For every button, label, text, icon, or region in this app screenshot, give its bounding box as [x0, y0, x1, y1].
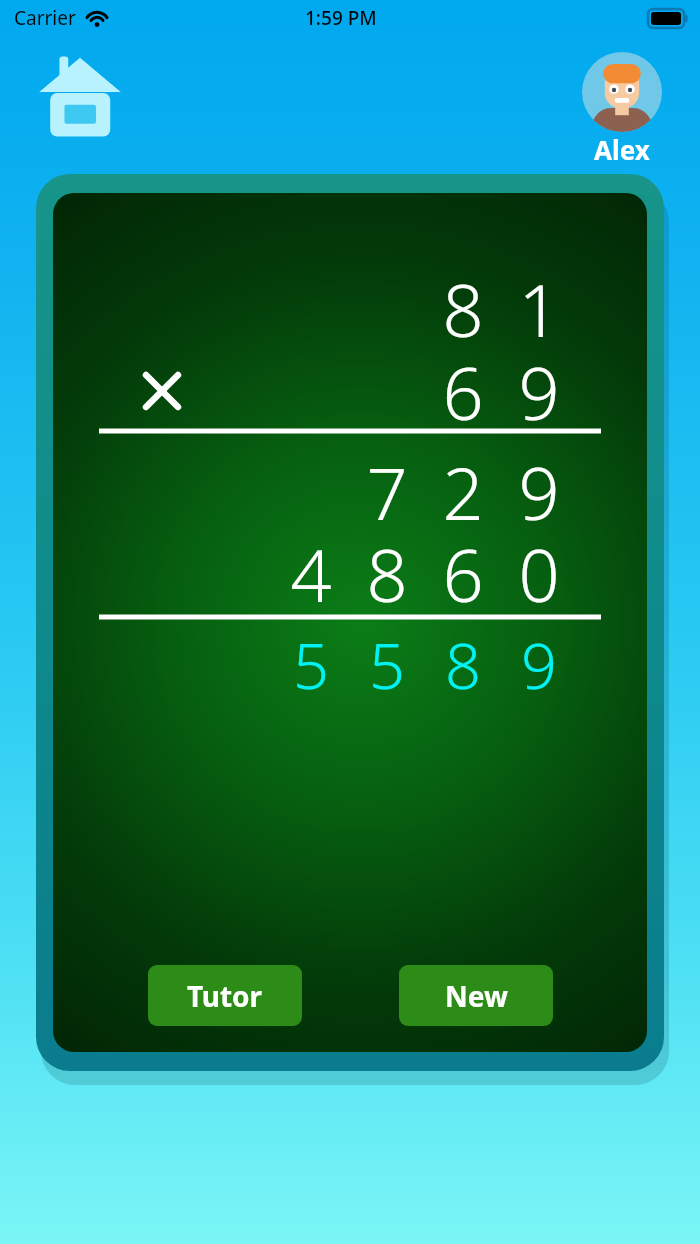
staticText: 7 [366, 443, 408, 541]
staticText: 9 [518, 443, 560, 541]
button[interactable]: Profile Alex [580, 52, 664, 162]
staticText: 4 [290, 525, 332, 623]
staticText: 1:59 PM [305, 5, 377, 31]
button[interactable]: New [399, 965, 553, 1026]
staticText: 5 [369, 622, 405, 708]
staticText: Alex [594, 132, 650, 164]
staticText: 1 [518, 260, 560, 358]
staticText: 9 [521, 622, 557, 708]
staticText: 2 [442, 443, 484, 541]
staticText: 8 [366, 525, 408, 623]
staticText: 0 [518, 525, 560, 623]
staticText: 5 [293, 622, 329, 708]
button[interactable]: Home [38, 52, 122, 140]
staticText: 9 [518, 343, 560, 441]
staticText: Carrier [14, 5, 76, 31]
staticText: 8 [445, 622, 481, 708]
staticText: 8 [442, 260, 484, 358]
button[interactable]: Tutor [148, 965, 302, 1026]
staticText: New [445, 977, 508, 1015]
staticText: Tutor [187, 977, 263, 1015]
staticText: 6 [442, 525, 484, 623]
staticText: 6 [442, 343, 484, 441]
